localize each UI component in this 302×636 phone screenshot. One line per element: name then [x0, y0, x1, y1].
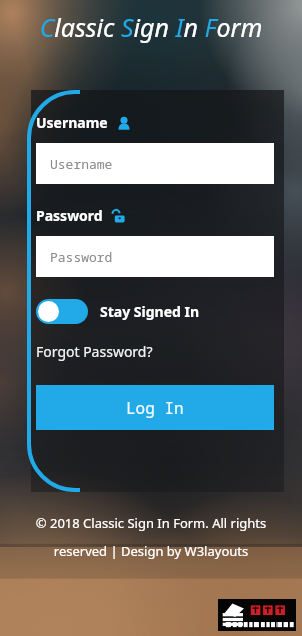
staticText: Username	[36, 113, 108, 132]
staticText: Stay Signed In	[100, 302, 200, 321]
staticText: © 2018 Classic Sign In Form. All rights …	[10, 514, 292, 560]
button[interactable]: Password	[36, 236, 274, 277]
button[interactable]: Stay Signed In	[36, 299, 200, 324]
staticText: Password	[50, 248, 113, 266]
button[interactable]: Log In	[36, 385, 274, 430]
staticText: Password	[36, 206, 103, 225]
staticText: Forgot Password?	[36, 342, 153, 361]
staticText: Username	[50, 155, 113, 173]
button[interactable]: Username	[36, 143, 274, 184]
button[interactable]: Forgot Password?	[36, 342, 153, 361]
staticText: Log In	[126, 397, 184, 419]
staticText: Classic Sign In Form	[26, 10, 276, 44]
